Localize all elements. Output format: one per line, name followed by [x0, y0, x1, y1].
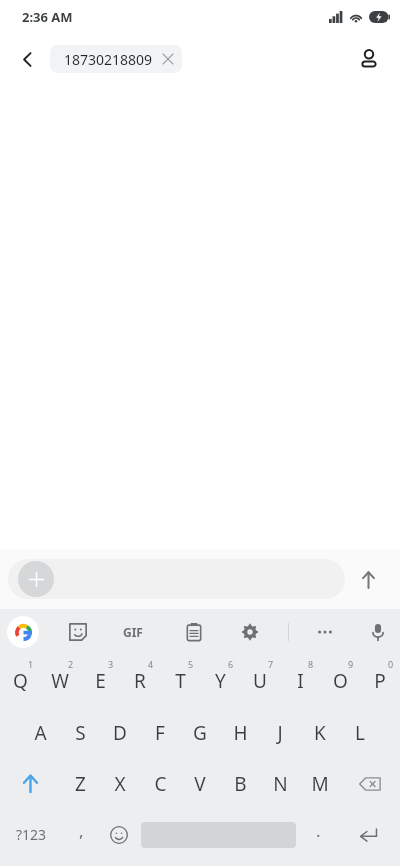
staticText: A [34, 720, 47, 746]
staticText: Z [75, 771, 86, 797]
button[interactable]: M [300, 760, 340, 807]
button[interactable]: Clipboard [176, 614, 212, 650]
button[interactable] [8, 559, 345, 599]
button[interactable]: J [260, 709, 300, 756]
button[interactable]: , [62, 812, 100, 857]
button[interactable]: I [280, 657, 320, 704]
staticText: 9 [348, 658, 354, 670]
staticText: 1 [28, 658, 34, 670]
staticText: P [374, 668, 386, 694]
button[interactable]: Emoji [100, 812, 138, 857]
button[interactable]: Back [6, 38, 48, 80]
staticText: D [113, 720, 127, 746]
button[interactable]: More options [307, 614, 343, 650]
button[interactable]: W [40, 657, 80, 704]
staticText: 7 [268, 658, 274, 670]
button[interactable]: GIF [115, 614, 151, 650]
button[interactable]: G [180, 709, 220, 756]
button[interactable]: Contact details [348, 38, 390, 80]
button[interactable]: R [120, 657, 160, 704]
staticText: Y [215, 668, 226, 694]
button[interactable]: T [160, 657, 200, 704]
button[interactable]: Google [7, 616, 39, 648]
staticText: I [297, 668, 304, 694]
button[interactable]: F [140, 709, 180, 756]
staticText: 5 [188, 658, 194, 670]
staticText: O [333, 668, 348, 694]
staticText: E [95, 668, 106, 694]
staticText: 8 [308, 658, 314, 670]
staticText: G [193, 720, 207, 746]
button[interactable]: Send [348, 559, 388, 599]
button[interactable]: A [20, 709, 60, 756]
button[interactable]: . [299, 812, 337, 857]
button[interactable]: Y [200, 657, 240, 704]
staticText: . [316, 819, 321, 842]
staticText: 4 [148, 658, 154, 670]
staticText: N [273, 771, 288, 797]
button[interactable]: U [240, 657, 280, 704]
button[interactable]: E [80, 657, 120, 704]
button[interactable]: B [220, 760, 260, 807]
staticText: Q [13, 668, 28, 694]
staticText: M [311, 771, 329, 797]
staticText: J [277, 720, 283, 746]
button[interactable]: ?123 [0, 812, 62, 857]
staticText: B [234, 771, 247, 797]
staticText: 18730218809 [64, 50, 153, 69]
button[interactable]: Add attachment [18, 561, 54, 597]
staticText: S [75, 720, 86, 746]
staticText: ?123 [16, 825, 47, 844]
button[interactable]: Q [0, 657, 40, 704]
button[interactable]: L [340, 709, 380, 756]
staticText: C [154, 771, 167, 797]
staticText: T [175, 668, 186, 694]
staticText: 2:36 AM [22, 8, 73, 26]
staticText: , [79, 819, 84, 842]
staticText: 2 [68, 658, 74, 670]
button[interactable]: 18730218809 [50, 45, 182, 73]
staticText: GIF [123, 624, 143, 640]
button[interactable]: O [320, 657, 360, 704]
button[interactable]: P [360, 657, 400, 704]
button[interactable]: Enter [337, 812, 400, 857]
button[interactable]: N [260, 760, 300, 807]
button[interactable]: Backspace [340, 760, 400, 807]
staticText: F [155, 720, 165, 746]
staticText: W [51, 668, 69, 694]
staticText: V [194, 771, 206, 797]
button[interactable]: Settings [232, 614, 268, 650]
staticText: 3 [108, 658, 114, 670]
staticText: H [233, 720, 248, 746]
staticText: U [253, 668, 267, 694]
staticText: 0 [388, 658, 394, 670]
button[interactable]: X [100, 760, 140, 807]
staticText: 6 [228, 658, 234, 670]
button[interactable]: Shift [0, 760, 60, 807]
staticText: X [114, 771, 126, 797]
button[interactable]: C [140, 760, 180, 807]
staticText: K [314, 720, 326, 746]
button[interactable]: V [180, 760, 220, 807]
button[interactable]: Z [60, 760, 100, 807]
button[interactable]: Stickers [60, 614, 96, 650]
button[interactable]: H [220, 709, 260, 756]
staticText: L [355, 720, 365, 746]
button[interactable]: S [60, 709, 100, 756]
button[interactable]: K [300, 709, 340, 756]
button[interactable]: D [100, 709, 140, 756]
staticText: R [134, 668, 146, 694]
button[interactable]: Voice input [360, 614, 396, 650]
